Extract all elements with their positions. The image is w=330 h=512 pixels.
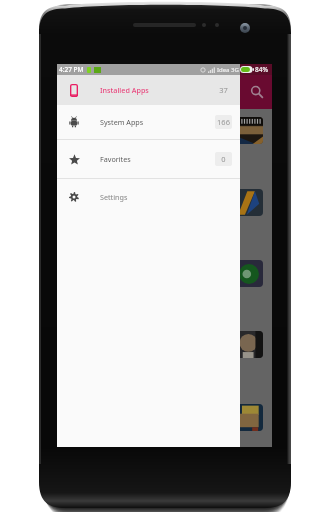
button[interactable]: Installed Apps — [57, 75, 240, 105]
button[interactable]: Favorites — [57, 140, 240, 178]
button[interactable] — [236, 331, 263, 358]
staticText: 37 — [219, 85, 228, 95]
button[interactable] — [236, 117, 263, 144]
staticText: Settings — [100, 192, 128, 202]
staticText: 4:27 PM — [59, 65, 84, 74]
staticText: 0 — [221, 154, 226, 164]
button[interactable]: Search — [244, 79, 270, 105]
staticText: 84% — [255, 65, 268, 74]
button[interactable] — [236, 260, 263, 287]
staticText: Favorites — [100, 154, 131, 164]
staticText: Idea 3G — [217, 66, 239, 74]
button[interactable]: Settings — [57, 179, 240, 215]
button[interactable] — [236, 189, 263, 216]
button[interactable]: System Apps — [57, 105, 240, 139]
staticText: System Apps — [100, 117, 144, 127]
staticText: 166 — [217, 117, 230, 127]
button[interactable] — [236, 404, 263, 431]
staticText: Installed Apps — [100, 85, 149, 95]
